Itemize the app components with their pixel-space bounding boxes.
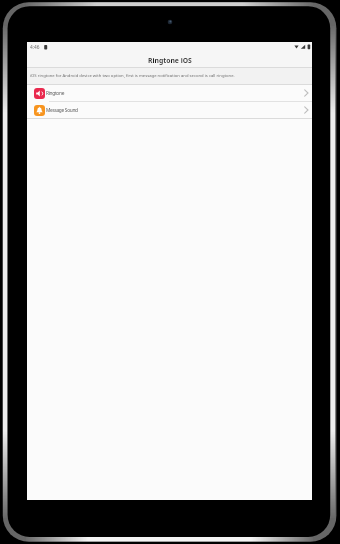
staticText: Ringtone [46,90,65,97]
staticText: Message Sound [46,107,78,114]
button[interactable]: Ringtone [27,85,312,101]
staticText: iOS ringtone for Android device with two… [30,73,235,79]
button[interactable]: Message Sound [27,102,312,118]
staticText: Ringtone iOS [148,56,192,65]
staticText: 4:46 [30,44,40,51]
